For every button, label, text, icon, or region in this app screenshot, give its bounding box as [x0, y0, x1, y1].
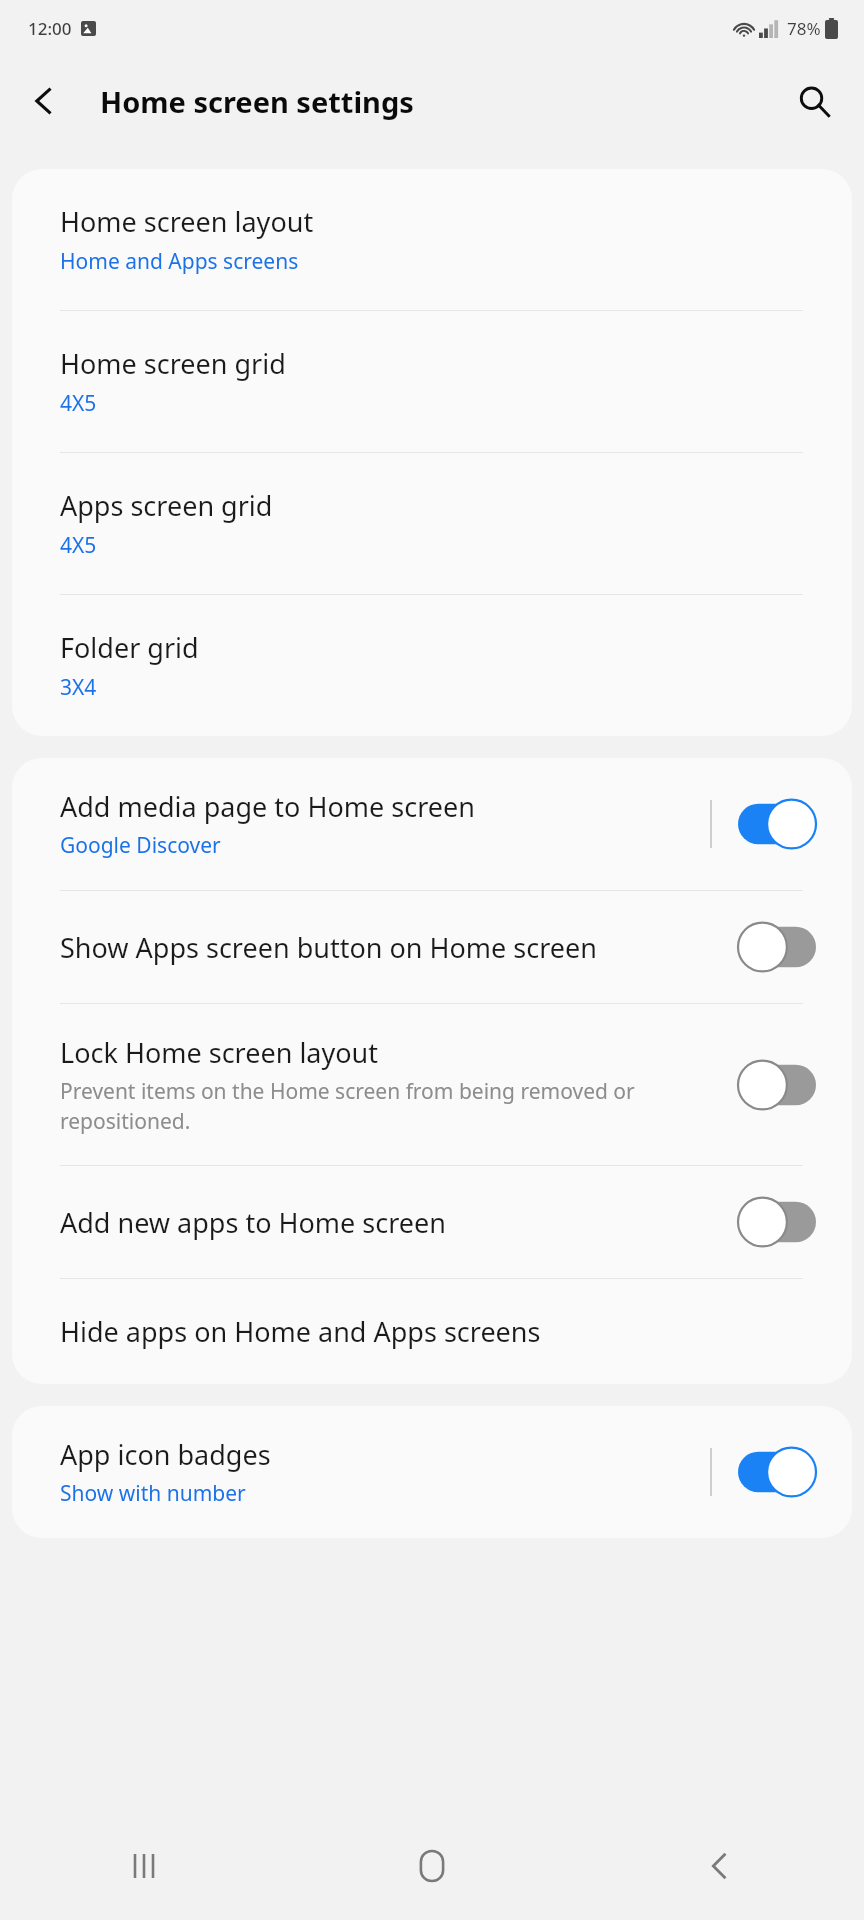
button[interactable]: App icon badges [12, 1406, 852, 1538]
staticText: Prevent items on the Home screen from be… [60, 1077, 696, 1135]
button[interactable]: Home screen grid [12, 311, 852, 452]
button[interactable]: Show Apps screen button on Home screen [12, 891, 852, 1003]
staticText: Folder grid [60, 629, 199, 666]
button[interactable]: Off [738, 921, 816, 973]
staticText: Google Discover [60, 831, 221, 860]
button[interactable]: On [738, 1446, 816, 1498]
button[interactable]: Recents [0, 1812, 288, 1920]
staticText: Show Apps screen button on Home screen [60, 929, 597, 966]
button[interactable]: On [738, 798, 816, 850]
button[interactable]: Add new apps to Home screen [12, 1166, 852, 1278]
button[interactable]: Search [786, 73, 842, 129]
button[interactable]: Back [18, 75, 70, 127]
button[interactable]: Off [738, 1059, 816, 1111]
button[interactable]: Back [576, 1812, 864, 1920]
staticText: Apps screen grid [60, 487, 273, 524]
staticText: App icon badges [60, 1436, 271, 1473]
button[interactable]: Add media page to Home screen [12, 758, 852, 890]
staticText: 12:00 [28, 17, 72, 40]
staticText: 78% [787, 17, 821, 40]
staticText: Home screen settings [100, 82, 414, 121]
button[interactable]: Lock Home screen layout [12, 1004, 852, 1165]
staticText: Home screen layout [60, 203, 314, 240]
button[interactable]: Apps screen grid [12, 453, 852, 594]
staticText: Add new apps to Home screen [60, 1204, 446, 1241]
staticText: Add media page to Home screen [60, 788, 475, 825]
button[interactable]: Off [738, 1196, 816, 1248]
staticText: 3X4 [60, 673, 97, 702]
staticText: Home and Apps screens [60, 247, 299, 276]
button[interactable]: Home screen layout [12, 169, 852, 310]
button[interactable]: Folder grid [12, 595, 852, 736]
staticText: Hide apps on Home and Apps screens [60, 1313, 541, 1350]
staticText: 4X5 [60, 531, 97, 560]
staticText: Show with number [60, 1479, 246, 1508]
button[interactable]: Home [288, 1812, 576, 1920]
staticText: Home screen grid [60, 345, 286, 382]
staticText: 4X5 [60, 389, 97, 418]
staticText: Lock Home screen layout [60, 1034, 379, 1071]
button[interactable]: Hide apps on Home and Apps screens [12, 1279, 852, 1384]
